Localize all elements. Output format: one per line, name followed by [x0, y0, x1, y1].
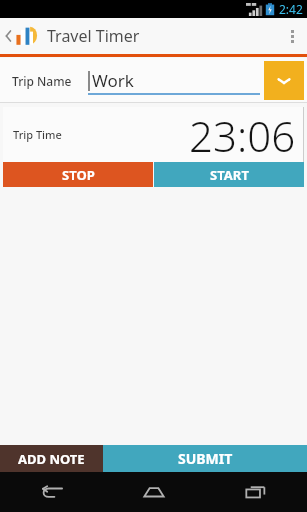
- button[interactable]: ADD NOTE: [0, 445, 103, 472]
- staticText: Travel Timer: [47, 25, 140, 47]
- button[interactable]: More options: [277, 18, 307, 54]
- staticText: Work: [92, 69, 134, 92]
- staticText: Trip Time: [13, 127, 62, 142]
- button[interactable]: Back: [0, 472, 103, 512]
- staticText: 2:42: [279, 1, 303, 17]
- button[interactable]: SUBMIT: [103, 445, 307, 472]
- button[interactable]: Recent apps: [205, 472, 307, 512]
- staticText: SUBMIT: [178, 449, 233, 468]
- button[interactable]: STOP: [3, 162, 153, 187]
- staticText: 23:06: [189, 107, 296, 162]
- button[interactable]: Work: [88, 58, 260, 103]
- staticText: ADD NOTE: [18, 450, 85, 468]
- staticText: Trip Name: [12, 73, 72, 89]
- button[interactable]: Choose trip: [264, 61, 304, 100]
- staticText: START: [210, 166, 249, 184]
- staticText: STOP: [62, 166, 95, 184]
- button[interactable]: Home: [103, 472, 205, 512]
- button[interactable]: Back: [4, 28, 13, 44]
- button[interactable]: START: [154, 162, 304, 187]
